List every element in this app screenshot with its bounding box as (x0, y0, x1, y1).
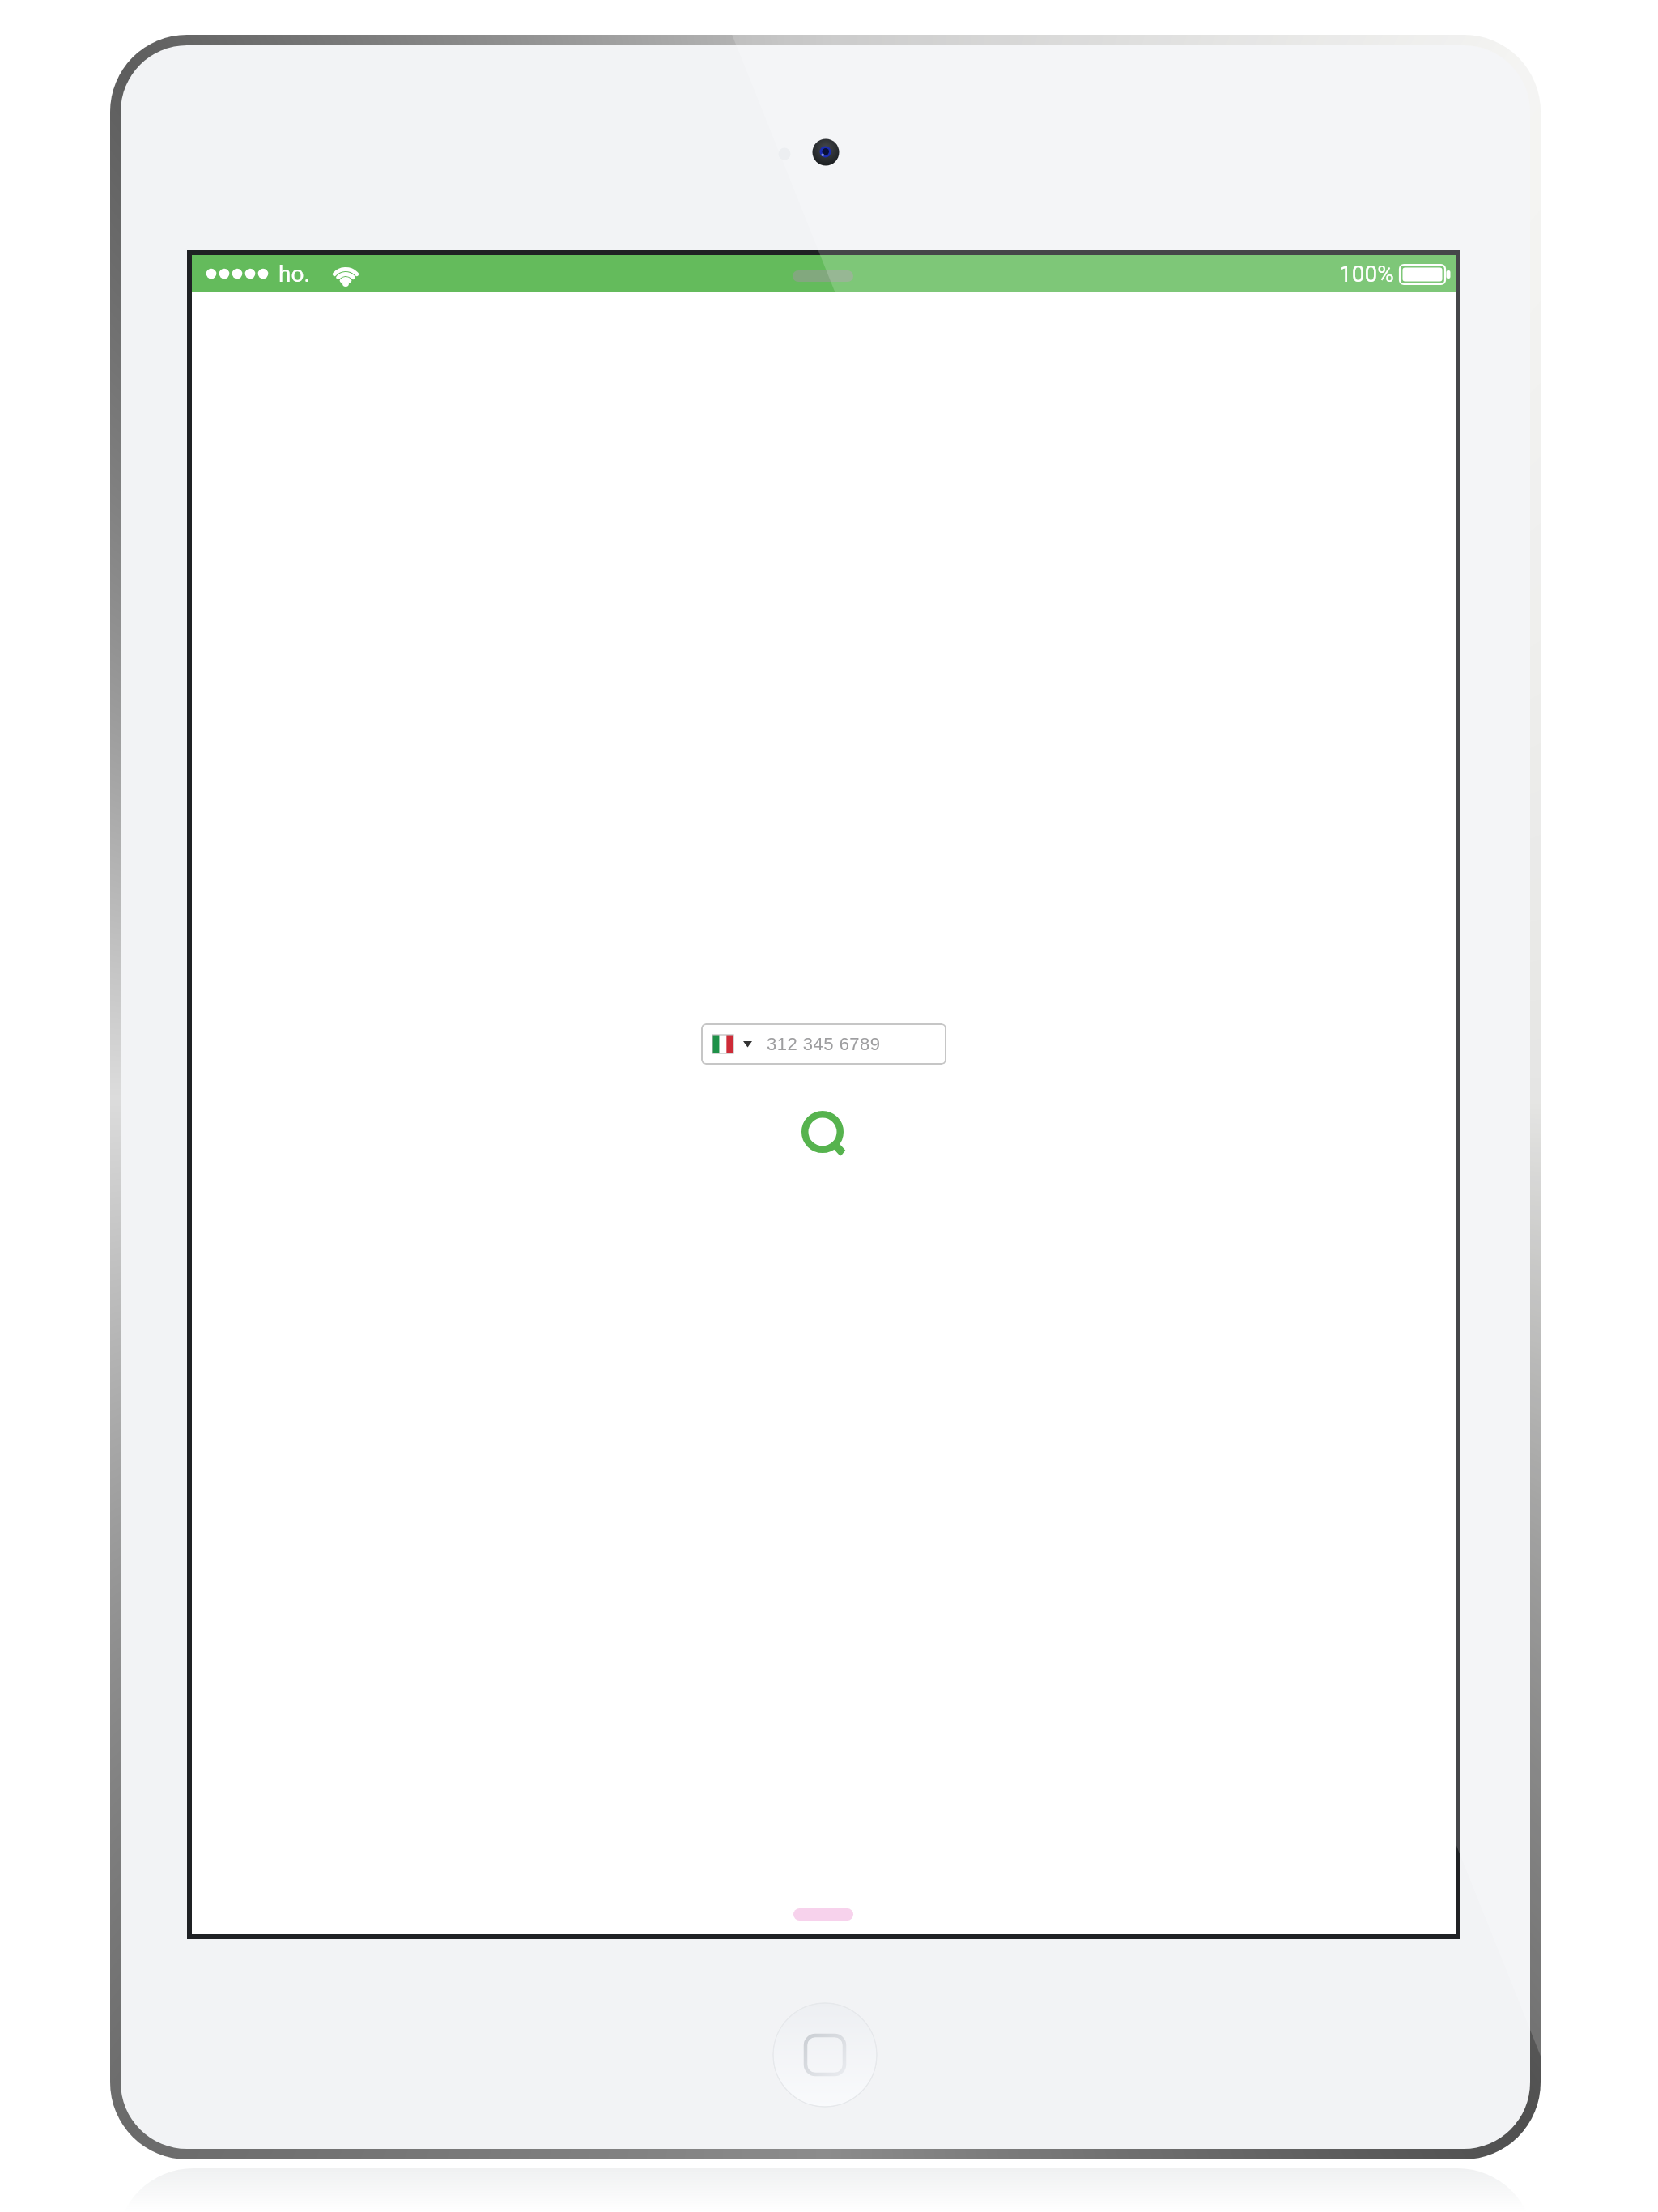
button[interactable] (795, 1104, 850, 1163)
staticText: ho. (278, 261, 310, 287)
button[interactable] (772, 2002, 878, 2108)
button[interactable]: 312 345 6789 (701, 1023, 946, 1065)
staticText: 312 345 6789 (767, 1034, 881, 1054)
staticText: 100% (1339, 261, 1394, 287)
